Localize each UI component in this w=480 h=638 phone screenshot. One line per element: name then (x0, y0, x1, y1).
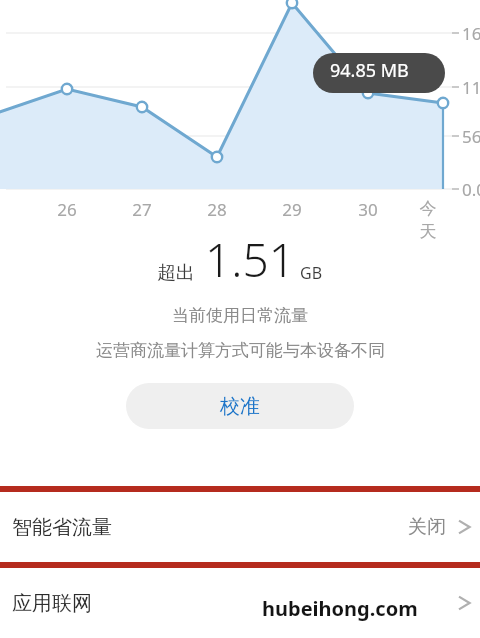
button[interactable]: 智能省流量 (0, 492, 480, 562)
staticText: 94.85 MB (330, 58, 409, 83)
button[interactable]: 应用联网 (0, 568, 480, 638)
staticText: 当前使用日常流量 (172, 305, 308, 326)
staticText: 30 (354, 198, 382, 221)
staticText: 112 (462, 76, 480, 99)
staticText: 关闭 (408, 515, 446, 539)
staticText: hubeihong.com (262, 595, 418, 622)
staticText: 应用联网 (12, 591, 92, 616)
staticText: 超出 (157, 261, 195, 285)
other: Open (454, 593, 474, 613)
staticText: 1.51 (205, 228, 296, 291)
staticText: 运营商流量计算方式可能与本设备不同 (96, 340, 385, 361)
button[interactable]: 校准 (126, 383, 354, 429)
staticText: 0.0 (462, 178, 480, 201)
staticText: 今天 (414, 198, 442, 242)
staticText: 28 (203, 198, 231, 221)
staticText: GB (300, 262, 323, 284)
staticText: 29 (278, 198, 306, 221)
staticText: 169 (462, 22, 480, 45)
staticText: 56 (462, 125, 480, 148)
staticText: 26 (53, 198, 81, 221)
staticText: 校准 (220, 394, 260, 419)
staticText: 智能省流量 (12, 515, 112, 540)
staticText: 27 (128, 198, 156, 221)
other: Open (454, 517, 474, 537)
